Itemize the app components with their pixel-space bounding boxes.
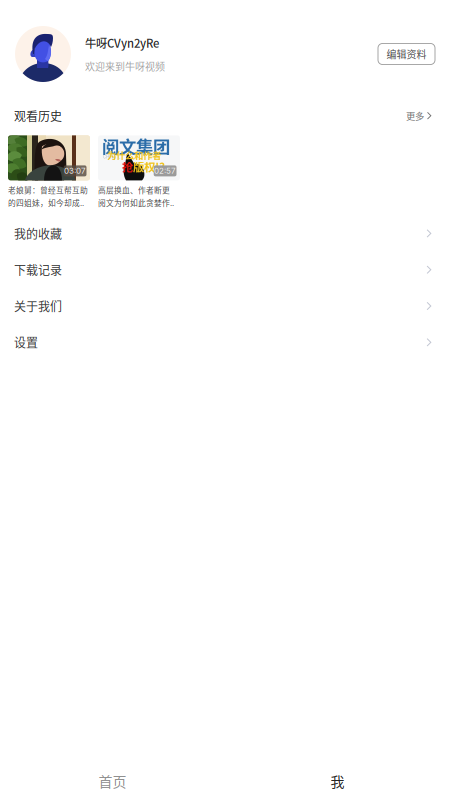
staticText: 关于我们 [14, 297, 62, 315]
staticText: 更多 [406, 109, 424, 122]
button[interactable]: 编辑资料 [378, 43, 435, 64]
staticText: 老娘舅：曾经互帮互助 [8, 184, 88, 196]
staticText: 为什么和作者 [107, 148, 161, 162]
staticText: 03:07 [64, 166, 86, 176]
staticText: 版权!? [133, 158, 165, 175]
button[interactable]: 关于我们 [0, 288, 450, 324]
button[interactable]: 阅文集团 [98, 135, 180, 208]
staticText: 的四姐妹，如今却成.. [8, 197, 84, 208]
button[interactable]: 下载记录 [0, 252, 450, 288]
staticText: 首页 [98, 771, 126, 791]
staticText: 下载记录 [14, 261, 62, 278]
button[interactable]: 我的收藏 [0, 215, 450, 252]
staticText: 抢 [122, 158, 133, 175]
button[interactable]: 更多 [406, 109, 431, 122]
staticText: 牛呀CVyn2yRe [85, 35, 159, 51]
button[interactable]: 设置 [0, 324, 450, 360]
button[interactable]: 首页 [0, 754, 225, 800]
staticText: 阅文为何如此贪婪作.. [98, 197, 174, 208]
staticText: 我的收藏 [14, 225, 62, 242]
button[interactable]: 我 [225, 754, 450, 800]
staticText: 欢迎来到牛呀视频 [85, 59, 165, 73]
staticText: 设置 [14, 334, 38, 351]
staticText: 阅文集团 [102, 133, 170, 158]
staticText: 观看历史 [14, 107, 62, 124]
button[interactable]: 03:07 [8, 135, 90, 208]
staticText: 编辑资料 [386, 47, 426, 61]
staticText: 02:57 [154, 166, 176, 176]
staticText: 我 [330, 771, 344, 791]
staticText: CHINA L [103, 154, 120, 160]
staticText: 高层换血、作者断更 [98, 184, 170, 196]
